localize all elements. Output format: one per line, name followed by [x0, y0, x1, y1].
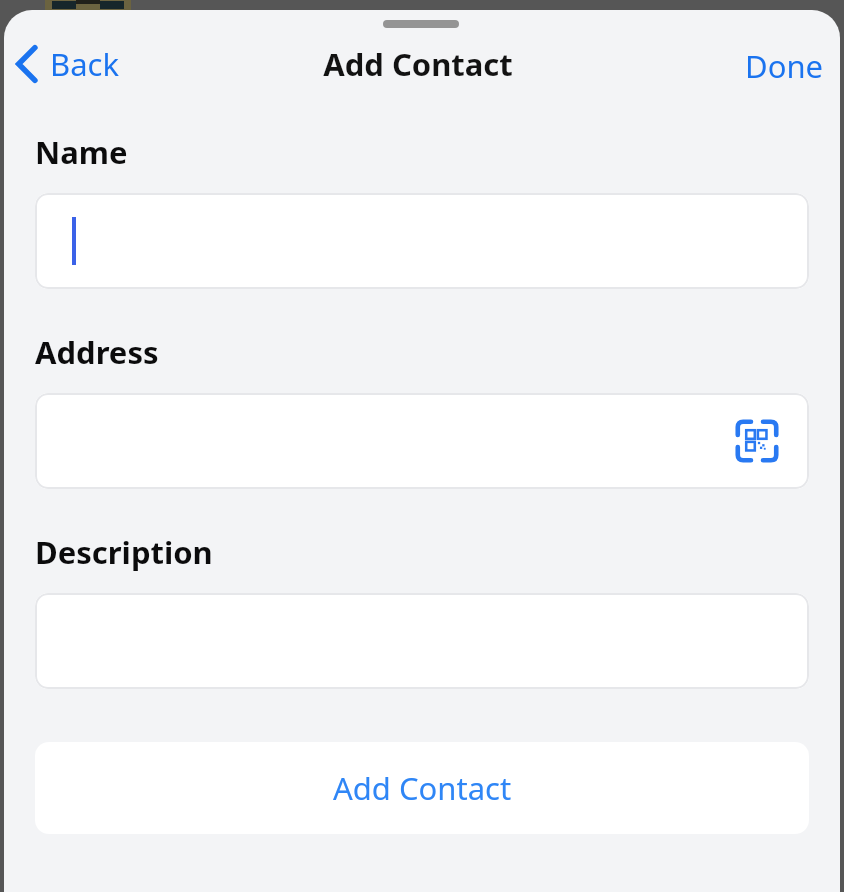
- staticText: Add Contact: [333, 767, 512, 809]
- button[interactable]: [35, 593, 809, 689]
- staticText: Description: [35, 531, 213, 573]
- button[interactable]: Add Contact: [35, 742, 809, 834]
- button[interactable]: Scan QR code: [735, 419, 779, 463]
- button[interactable]: Done: [729, 41, 840, 87]
- staticText: Done: [745, 45, 824, 83]
- button[interactable]: Scan QR code: [35, 393, 809, 489]
- staticText: Add Contact: [323, 43, 513, 85]
- staticText: Name: [35, 131, 128, 173]
- button[interactable]: Back: [4, 41, 129, 87]
- button[interactable]: [35, 193, 809, 289]
- staticText: Address: [35, 331, 159, 373]
- staticText: Back: [50, 43, 119, 85]
